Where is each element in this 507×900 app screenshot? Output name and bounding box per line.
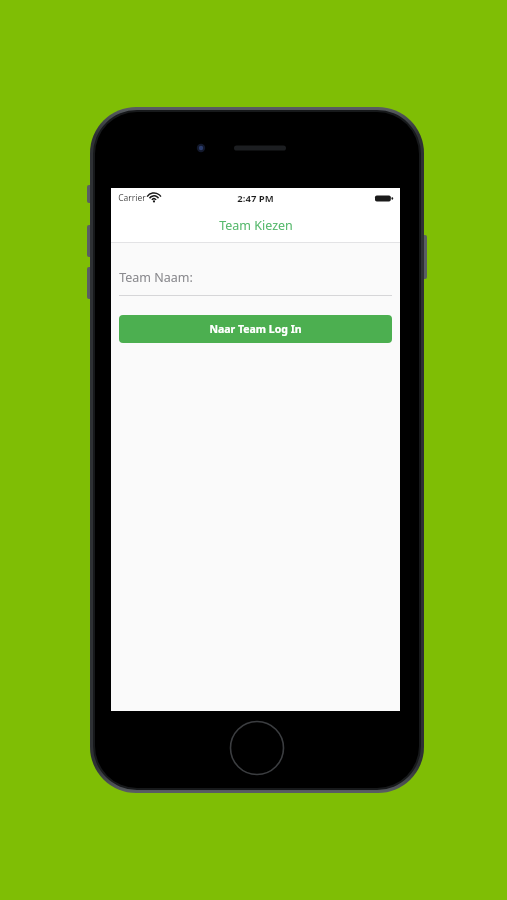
staticText: Naar Team Log In: [209, 322, 302, 336]
button[interactable]: Team Kiezen: [219, 217, 293, 234]
staticText: Carrier: [118, 192, 146, 204]
staticText: 2:47 PM: [237, 192, 274, 205]
staticText: Team Naam:: [119, 269, 193, 286]
button[interactable]: Naar Team Log In: [119, 315, 392, 343]
button[interactable]: Team Naam:: [119, 269, 392, 296]
